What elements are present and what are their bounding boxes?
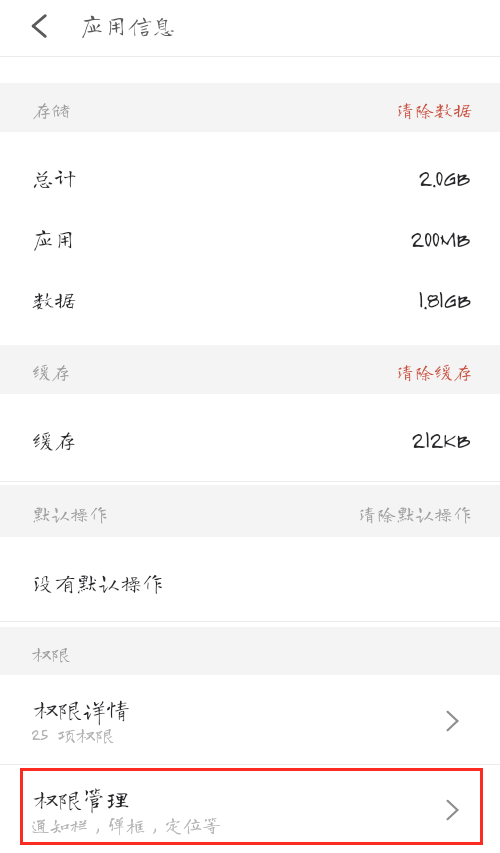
staticText: 权限管理: [34, 787, 130, 811]
staticText: 应用: [32, 228, 77, 250]
staticText: 25 项权限: [31, 725, 114, 744]
button[interactable]: 应用: [0, 208, 500, 269]
button[interactable]: 权限管理: [0, 765, 500, 853]
staticText: 存储: [32, 100, 71, 119]
staticText: 212KB: [411, 424, 470, 453]
staticText: 缓存: [32, 429, 77, 451]
staticText: 清除默认操作: [358, 504, 473, 523]
button[interactable]: 清除数据: [372, 90, 500, 125]
staticText: 1.81GB: [418, 284, 470, 313]
staticText: 通知栏，弹框，定位等: [31, 815, 222, 834]
staticText: 清除缓存: [396, 362, 473, 381]
button[interactable]: 清除默认操作: [334, 494, 500, 529]
button[interactable]: 权限详情: [0, 675, 500, 764]
staticText: 2.0GB: [418, 162, 470, 191]
staticText: 没有默认操作: [32, 572, 165, 594]
staticText: 总计: [32, 167, 77, 189]
button[interactable]: 没有默认操作: [0, 552, 500, 613]
staticText: 缓存: [32, 362, 71, 381]
button[interactable]: 数据: [0, 269, 500, 330]
staticText: 权限: [32, 644, 71, 663]
button[interactable]: 总计: [0, 147, 500, 208]
staticText: 200MB: [410, 223, 470, 252]
button[interactable]: 缓存: [0, 409, 500, 470]
button[interactable]: Back: [16, 3, 62, 49]
staticText: 数据: [32, 289, 77, 311]
button[interactable]: 清除缓存: [372, 352, 500, 387]
staticText: 应用信息: [80, 13, 176, 37]
staticText: 权限详情: [34, 697, 130, 721]
staticText: 默认操作: [32, 504, 109, 523]
staticText: 清除数据: [396, 100, 473, 119]
